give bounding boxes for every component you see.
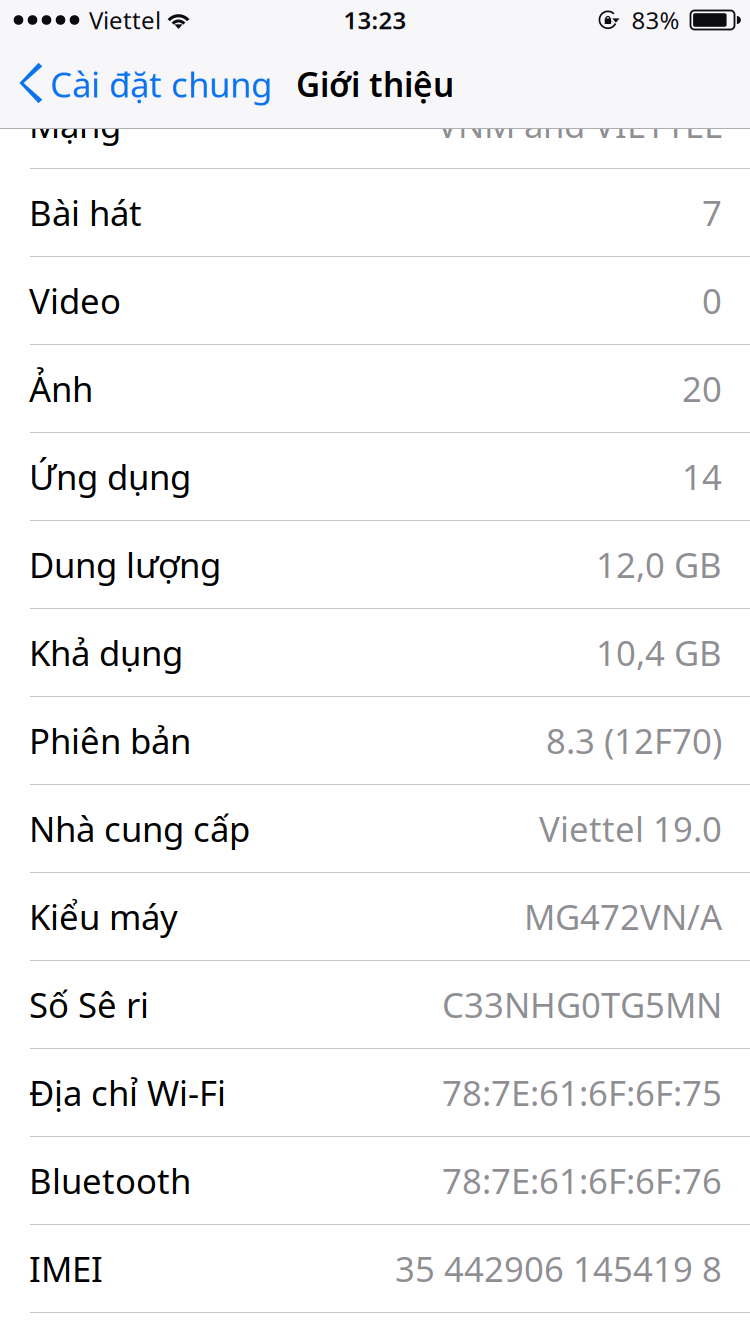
staticText: 14 [682,453,722,499]
staticText: 12,0 GB [596,541,722,587]
staticText: 13:23 [343,4,406,36]
staticText: Nhà cung cấp [29,805,250,851]
staticText: 8.3 (12F70) [546,717,722,763]
button[interactable]: Nhà cung cấp [0,785,750,872]
button[interactable]: Ứng dụng [0,433,750,520]
staticText: 20 [682,365,722,411]
staticText: Giới thiệu [296,62,454,106]
staticText: Video [29,277,121,323]
staticText: Mạng [29,101,121,147]
button[interactable]: Dung lượng [0,521,750,608]
staticText: 7 [702,189,722,235]
button[interactable]: Địa chỉ Wi-Fi [0,1049,750,1136]
staticText: Dung lượng [29,541,221,587]
staticText: 35 442906 145419 8 [395,1245,722,1291]
button[interactable]: Mạng [0,81,750,168]
staticText: 10,4 GB [596,629,722,675]
button[interactable]: Quay lại Cài đặt chung [0,40,286,128]
staticText: C33NHG0TG5MN [442,981,722,1027]
button[interactable]: Kiểu máy [0,873,750,960]
staticText: 78:7E:61:6F:6F:75 [442,1069,722,1115]
staticText: Số Sê ri [29,981,149,1027]
staticText: VNM and VIETTEL [437,101,722,147]
button[interactable]: Ảnh [0,345,750,432]
staticText: MG472VN/A [524,893,722,939]
staticText: Kiểu máy [29,893,178,939]
button[interactable]: Bài hát [0,169,750,256]
staticText: IMEI [29,1245,103,1291]
staticText: Viettel 19.0 [539,805,722,851]
staticText: Phiên bản [29,717,191,763]
staticText: Địa chỉ Wi-Fi [29,1069,226,1115]
button[interactable]: Video [0,257,750,344]
staticText: Ảnh [29,365,93,411]
staticText: Cài đặt chung [50,61,272,107]
staticText: Bài hát [29,189,142,235]
staticText: 0 [702,277,722,323]
staticText: Viettel [89,4,161,36]
button[interactable]: Số Sê ri [0,961,750,1048]
staticText: Khả dụng [29,629,183,675]
staticText: 78:7E:61:6F:6F:76 [442,1157,722,1203]
staticText: 83% [631,4,679,36]
button[interactable]: Khả dụng [0,609,750,696]
staticText: Bluetooth [29,1157,191,1203]
button[interactable]: IMEI [0,1225,750,1312]
staticText: Ứng dụng [29,453,191,499]
button[interactable]: Phiên bản [0,697,750,784]
button[interactable]: Bluetooth [0,1137,750,1224]
